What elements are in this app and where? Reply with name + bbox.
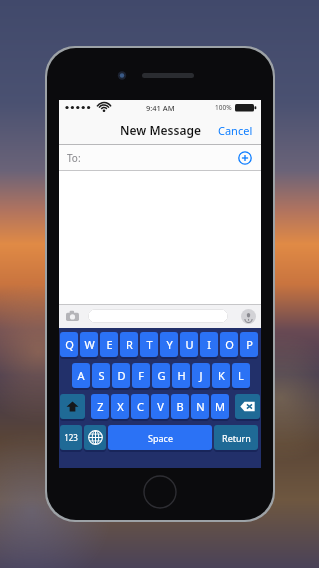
button[interactable]: Return [214,425,258,450]
staticText: M [215,399,225,414]
staticText: L [238,368,244,383]
staticText: To: [67,151,81,165]
button[interactable]: S [92,363,110,388]
staticText: 9:41 AM [146,103,175,113]
button[interactable]: T [140,332,158,357]
button[interactable]: Record audio [239,307,257,325]
staticText: A [77,368,85,383]
button[interactable] [88,309,228,323]
button[interactable]: I [200,332,218,357]
button[interactable]: Q [60,332,78,357]
staticText: O [225,337,234,352]
staticText: Q [65,337,74,352]
staticText: 123 [64,432,78,443]
button[interactable]: C [131,394,149,419]
button[interactable]: M [211,394,229,419]
staticText: New Message [120,122,201,138]
button[interactable]: Add contact [235,148,255,168]
button[interactable]: K [212,363,230,388]
staticText: V [157,399,164,414]
staticText: I [207,337,211,352]
staticText: H [177,368,186,383]
staticText: W [84,337,95,352]
button[interactable]: E [100,332,118,357]
button[interactable]: Y [160,332,178,357]
button[interactable]: R [120,332,138,357]
staticText: Y [166,337,173,352]
staticText: 100% [215,103,232,112]
staticText: P [246,337,253,352]
button[interactable] [84,425,106,450]
button[interactable]: Cancel [210,117,261,144]
button[interactable]: N [191,394,209,419]
button[interactable]: Space [108,425,212,450]
staticText: J [199,368,203,383]
button[interactable]: V [151,394,169,419]
staticText: D [117,368,126,383]
staticText: C [137,399,144,414]
button[interactable] [60,394,85,419]
staticText: N [196,399,205,414]
button[interactable]: B [171,394,189,419]
button[interactable]: G [152,363,170,388]
button[interactable]: Z [91,394,109,419]
button[interactable]: H [172,363,190,388]
staticText: Return [222,432,251,444]
button[interactable]: U [180,332,198,357]
button[interactable]: A [72,363,90,388]
button[interactable]: W [80,332,98,357]
staticText: K [218,368,225,383]
button[interactable]: F [132,363,150,388]
button[interactable]: L [232,363,250,388]
button[interactable]: Camera [63,307,81,325]
button[interactable]: J [192,363,210,388]
button[interactable] [235,394,260,419]
staticText: S [98,368,105,383]
button[interactable]: O [220,332,238,357]
staticText: U [185,337,194,352]
staticText: F [138,368,144,383]
staticText: Z [97,399,104,414]
button[interactable]: 123 [60,425,82,450]
staticText: X [117,399,124,414]
staticText: T [146,337,153,352]
staticText: Space [148,432,173,444]
staticText: Cancel [218,123,253,138]
staticText: R [126,337,133,352]
staticText: E [106,337,113,352]
staticText: B [176,399,184,414]
button[interactable]: P [240,332,258,357]
button[interactable]: X [111,394,129,419]
staticText: G [157,368,166,383]
button[interactable]: D [112,363,130,388]
